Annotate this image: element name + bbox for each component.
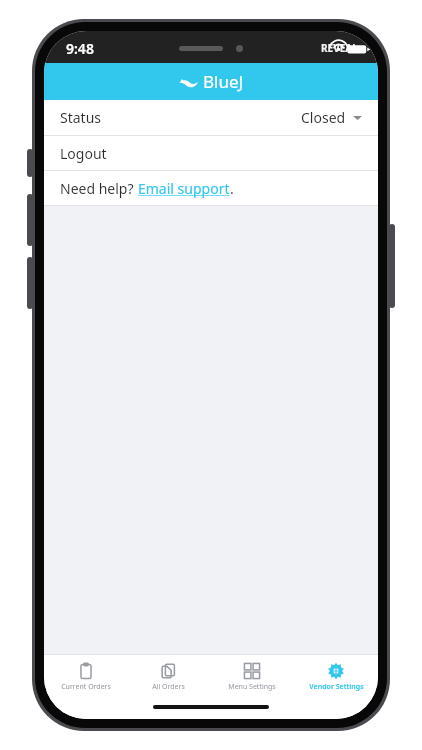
staticText: All Orders xyxy=(152,682,185,692)
staticText: Current Orders xyxy=(61,682,111,692)
staticText: Closed xyxy=(301,108,346,127)
staticText: . xyxy=(230,179,234,198)
staticText: BlueJ xyxy=(203,70,244,93)
staticText: Menu Settings xyxy=(228,682,276,692)
button[interactable]: Status xyxy=(44,100,378,135)
staticText: Email support xyxy=(138,179,230,198)
staticText: Status xyxy=(60,108,102,127)
button[interactable]: Logout xyxy=(44,136,378,170)
button[interactable]: Menu Settings xyxy=(210,655,294,699)
staticText: 9:48 xyxy=(66,39,94,58)
staticText: Vendor Settings xyxy=(309,682,364,692)
button[interactable]: Current Orders xyxy=(44,655,127,699)
staticText: Logout xyxy=(60,144,107,163)
button[interactable]: All Orders xyxy=(127,655,210,699)
button[interactable]: Email support xyxy=(138,179,230,198)
button[interactable]: Vendor Settings xyxy=(294,655,378,699)
staticText: Need help? xyxy=(60,179,138,198)
staticText: REVEAL xyxy=(321,41,358,55)
